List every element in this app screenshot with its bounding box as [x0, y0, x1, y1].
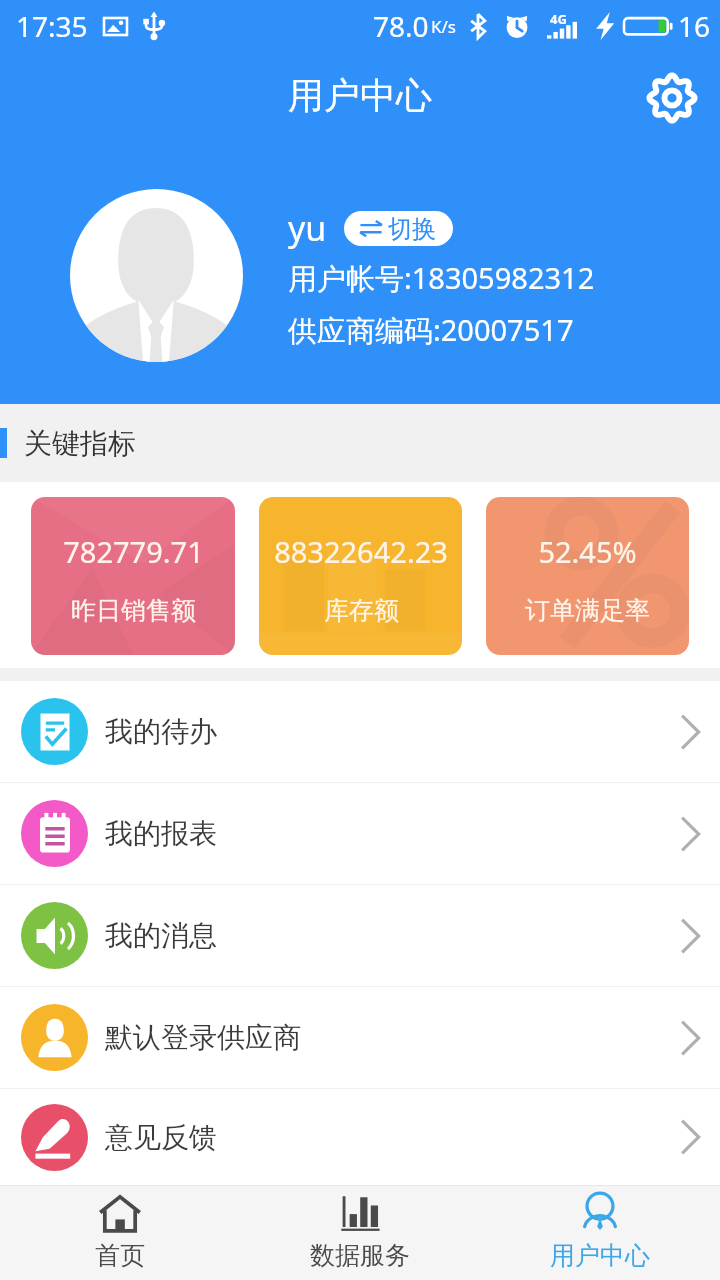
- staticText: 默认登录供应商: [105, 1020, 301, 1055]
- staticText: K/s: [431, 15, 456, 38]
- staticText: 用户中心: [550, 1240, 650, 1271]
- button[interactable]: 我的报表: [0, 783, 720, 884]
- button[interactable]: 切换: [344, 211, 453, 246]
- staticText: 昨日销售额: [71, 595, 196, 626]
- staticText: yu: [288, 205, 327, 251]
- button[interactable]: Settings: [640, 66, 704, 130]
- button[interactable]: 首页: [0, 1185, 240, 1280]
- staticText: 我的待办: [105, 714, 217, 749]
- staticText: 关键指标: [24, 426, 136, 461]
- button[interactable]: 52.45%: [486, 497, 689, 655]
- staticText: 4G: [550, 10, 567, 28]
- button[interactable]: 数据服务: [240, 1185, 480, 1280]
- staticText: 52.45%: [538, 532, 637, 571]
- staticText: 用户帐号:18305982312: [288, 258, 595, 298]
- button[interactable]: 我的消息: [0, 885, 720, 986]
- staticText: 用户中心: [288, 73, 432, 118]
- button[interactable]: 默认登录供应商: [0, 987, 720, 1088]
- staticText: 我的报表: [105, 816, 217, 851]
- staticText: 首页: [95, 1240, 145, 1271]
- staticText: 我的消息: [105, 918, 217, 953]
- button[interactable]: 88322642.23: [259, 497, 462, 655]
- button[interactable]: 意见反馈: [0, 1089, 720, 1185]
- button[interactable]: 782779.71: [31, 497, 235, 655]
- staticText: 78.0: [373, 7, 429, 45]
- button[interactable]: 我的待办: [0, 681, 720, 782]
- staticText: 库存额: [324, 595, 399, 626]
- staticText: 88322642.23: [274, 532, 448, 571]
- staticText: 供应商编码:20007517: [288, 310, 574, 350]
- staticText: 16: [678, 7, 711, 45]
- staticText: 17:35: [16, 7, 88, 45]
- staticText: 订单满足率: [525, 595, 650, 626]
- button[interactable]: 用户中心: [480, 1185, 720, 1280]
- staticText: 数据服务: [310, 1240, 410, 1271]
- staticText: 意见反馈: [105, 1120, 217, 1155]
- staticText: 782779.71: [63, 532, 204, 571]
- staticText: 切换: [388, 214, 436, 244]
